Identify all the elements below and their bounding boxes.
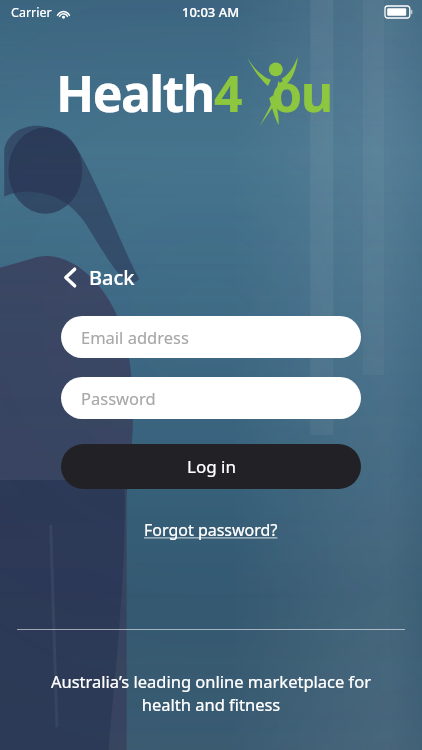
staticText: 10:03 AM: [182, 3, 240, 21]
other: Back: [64, 268, 77, 287]
button[interactable]: Forgot password?: [136, 515, 286, 545]
button[interactable]: Password: [61, 377, 361, 419]
staticText: Email address: [81, 326, 189, 348]
staticText: Australia’s leading online marketplace f…: [26, 670, 396, 716]
button[interactable]: Email address: [61, 316, 361, 358]
button[interactable]: Log in: [61, 444, 361, 489]
staticText: 4: [214, 59, 241, 127]
staticText: Health: [56, 59, 214, 127]
staticText: Carrier: [11, 4, 52, 21]
button[interactable]: Back: [64, 260, 145, 295]
staticText: ou: [271, 59, 332, 127]
staticText: Password: [81, 387, 156, 409]
staticText: Back: [89, 264, 135, 291]
staticText: Forgot password?: [144, 519, 278, 541]
staticText: Log in: [187, 455, 236, 478]
